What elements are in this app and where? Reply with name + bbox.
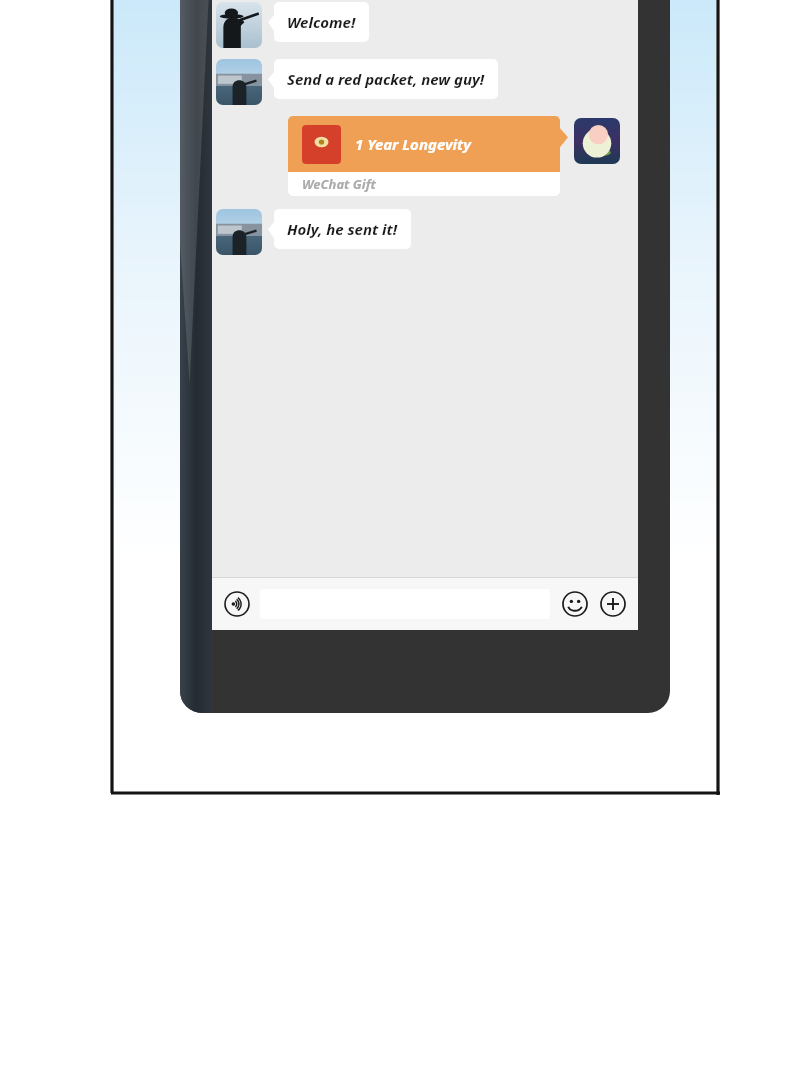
staticText: 1 Year Longevity — [355, 134, 472, 154]
button[interactable]: Voice input — [222, 589, 252, 619]
button[interactable]: More options — [598, 589, 628, 619]
button[interactable]: Welcome! — [274, 2, 369, 42]
button[interactable]: Peach gift — [574, 118, 620, 164]
button[interactable]: Emoji — [560, 589, 590, 619]
staticText: Holy, he sent it! — [287, 219, 398, 239]
button[interactable]: Contact avatar — [216, 2, 262, 48]
button[interactable]: Send a red packet, new guy! — [274, 59, 498, 99]
staticText: Welcome! — [287, 12, 356, 32]
staticText: Send a red packet, new guy! — [287, 69, 485, 89]
staticText: WeChat Gift — [302, 175, 376, 193]
button[interactable]: 1 Year Longevity — [288, 116, 560, 196]
button[interactable]: Holy, he sent it! — [274, 209, 411, 249]
button[interactable]: Contact avatar — [216, 59, 262, 105]
button[interactable]: Contact avatar — [216, 209, 262, 255]
